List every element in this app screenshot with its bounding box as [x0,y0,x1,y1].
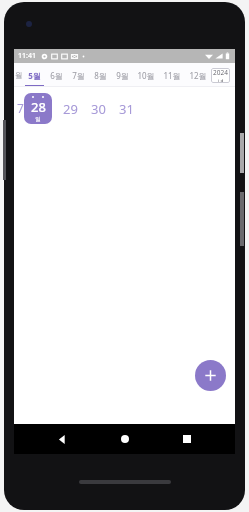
staticText: 7월 [72,70,85,81]
button[interactable]: 월 [14,63,23,87]
button[interactable]: 9월 [111,63,133,87]
staticText: 30 [91,100,106,118]
staticText: 28 [31,98,46,116]
staticText: 8월 [94,70,107,81]
button[interactable]: Home [110,424,140,454]
staticText: 5월 [28,70,41,81]
button[interactable]: 7 [14,87,24,129]
staticText: 11월 [163,70,181,81]
button[interactable]: 8월 [89,63,111,87]
staticText: 월 [15,71,23,80]
staticText: 7 [17,100,24,116]
staticText: 12월 [189,70,207,81]
button[interactable]: 10월 [133,63,159,87]
button[interactable]: 7월 [67,63,89,87]
staticText: 11:41 [18,51,36,61]
staticText: 9월 [116,70,129,81]
button[interactable]: 28 [24,93,52,124]
button[interactable]: 30 [88,93,108,124]
button[interactable]: Recent apps [172,424,202,454]
button[interactable]: 29 [60,93,80,124]
staticText: 일 [35,116,41,123]
staticText: 29 [63,100,78,118]
staticText: 31 [119,100,134,118]
staticText: 6월 [50,70,63,81]
staticText: 10월 [137,70,155,81]
button[interactable]: 12월 [185,63,211,87]
button[interactable]: 11월 [159,63,185,87]
button[interactable]: 2024년 [211,68,230,83]
button[interactable]: 6월 [45,63,67,87]
staticText: 2024년 [211,68,230,83]
button[interactable]: Back [47,424,77,454]
button[interactable]: 5월 [23,63,45,87]
button[interactable]: 31 [116,93,136,124]
button[interactable]: Add event [195,360,226,391]
